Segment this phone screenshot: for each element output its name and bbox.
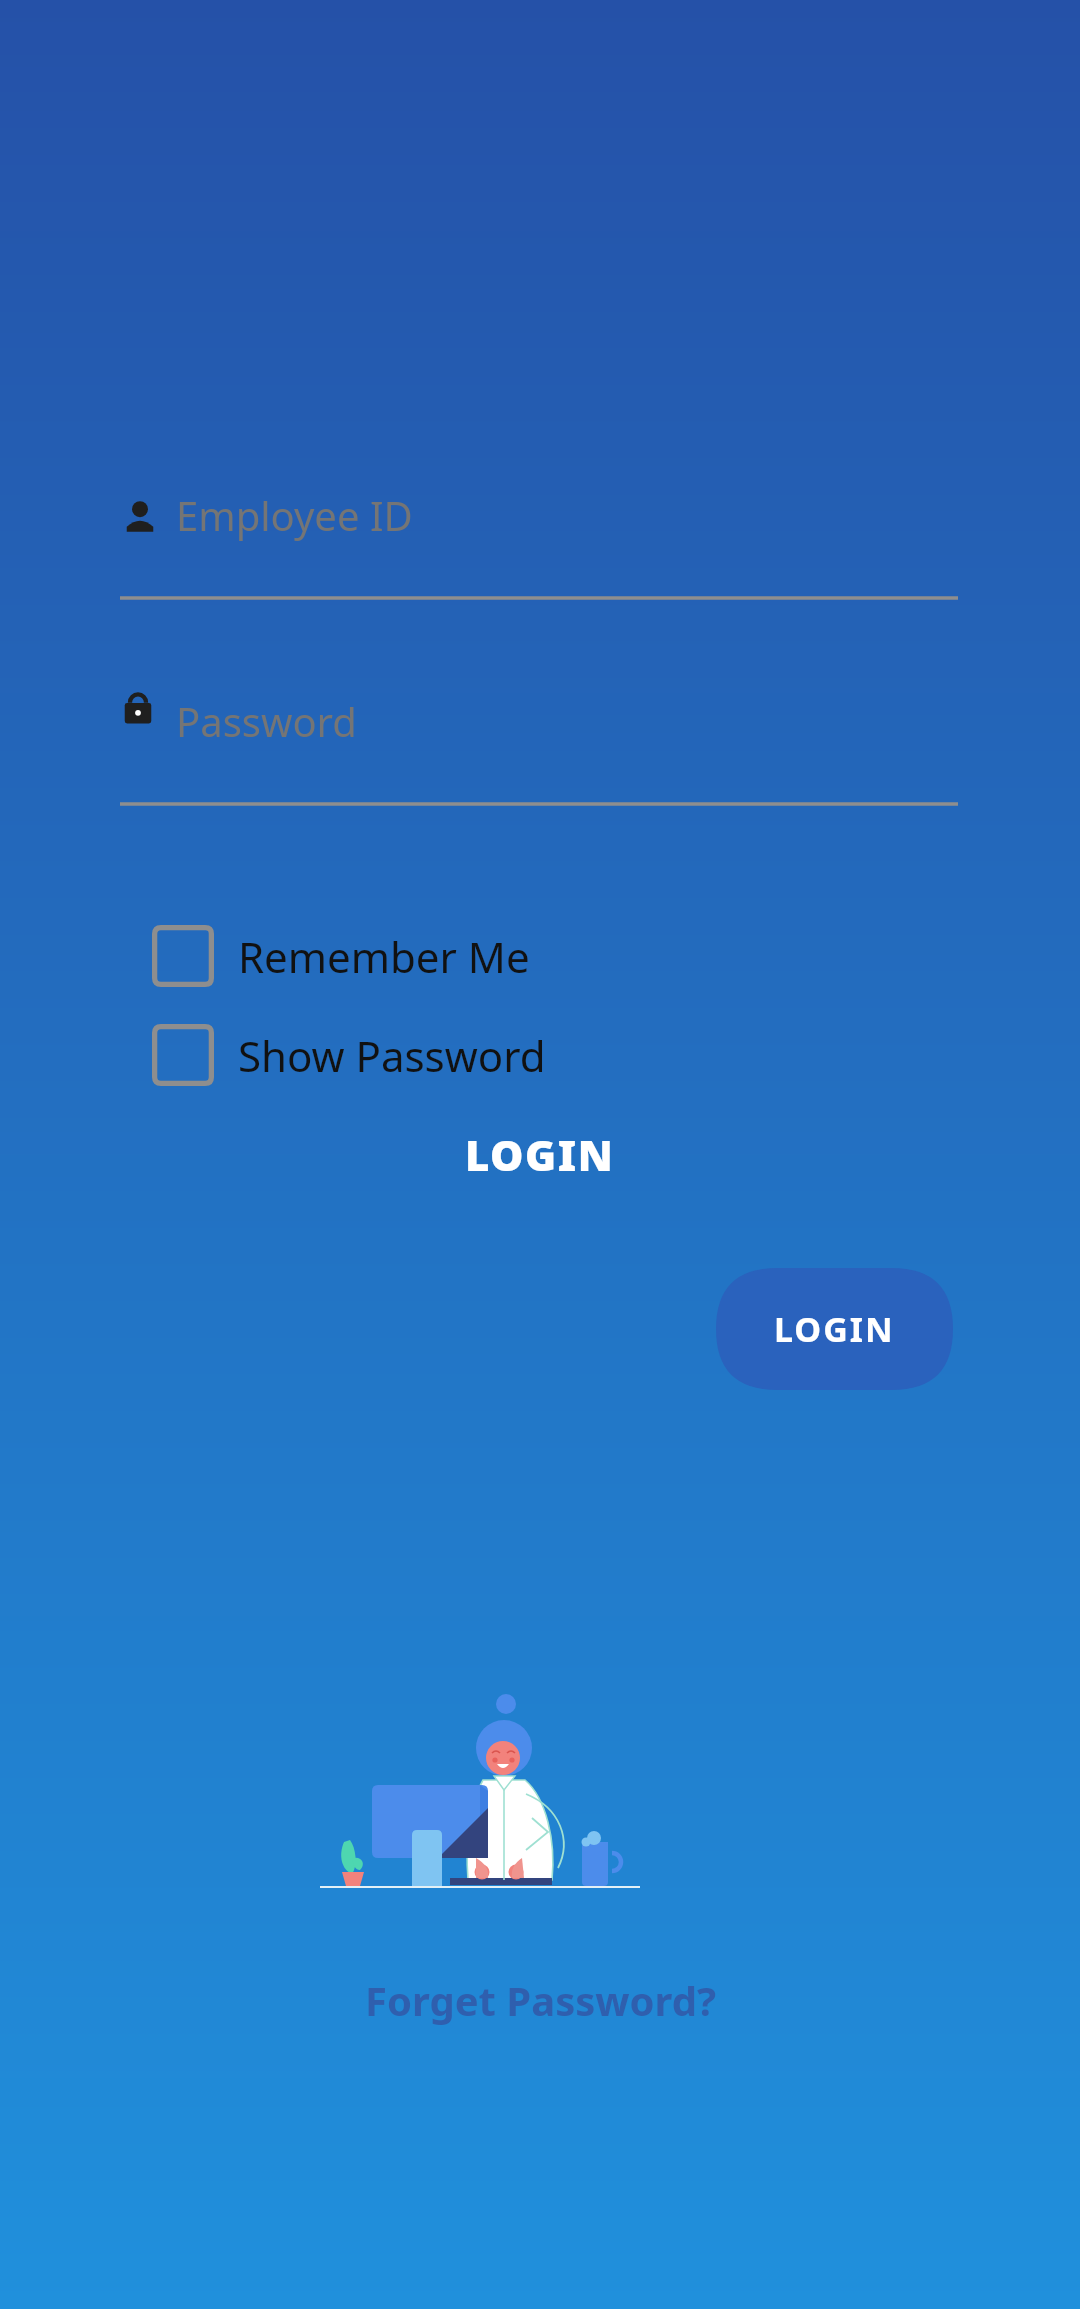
button[interactable]: Forget Password?: [300, 1965, 780, 2035]
staticText: Employee ID: [176, 488, 413, 542]
button[interactable]: Show Password: [152, 1013, 586, 1097]
staticText: Forget Password?: [365, 1973, 716, 2027]
staticText: Password: [176, 694, 357, 748]
button[interactable]: Remember Me: [152, 914, 586, 998]
button[interactable]: Password: [120, 658, 958, 806]
staticText: LOGIN: [465, 1126, 615, 1183]
button[interactable]: LOGIN: [716, 1268, 953, 1390]
staticText: Show Password: [238, 1027, 546, 1084]
button[interactable]: Employee ID: [120, 452, 958, 600]
staticText: Remember Me: [238, 928, 530, 985]
staticText: LOGIN: [774, 1306, 895, 1352]
